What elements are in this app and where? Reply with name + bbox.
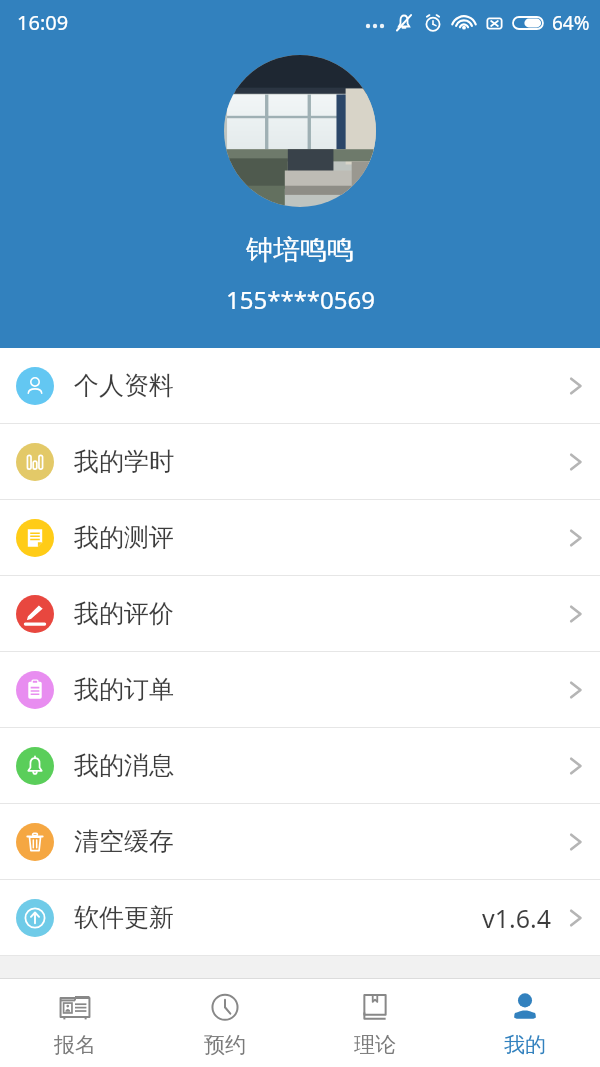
staticText: 我的测评 <box>74 522 174 553</box>
staticText: 理论 <box>354 1032 396 1058</box>
staticText: 我的订单 <box>74 674 174 705</box>
button[interactable]: 清空缓存 <box>0 804 600 879</box>
staticText: 我的学时 <box>74 446 174 477</box>
button[interactable]: 我的学时 <box>0 424 600 499</box>
staticText: v1.6.4 <box>482 901 552 935</box>
button[interactable]: 我的消息 <box>0 728 600 803</box>
button[interactable]: 我的 <box>450 979 600 1067</box>
button[interactable]: 预约 <box>150 979 300 1067</box>
button[interactable]: Profile photo <box>224 55 376 207</box>
button[interactable]: 个人资料 <box>0 348 600 423</box>
staticText: 软件更新 <box>74 902 174 933</box>
staticText: 我的消息 <box>74 750 174 781</box>
button[interactable]: 理论 <box>300 979 450 1067</box>
button[interactable]: 我的测评 <box>0 500 600 575</box>
staticText: 钟培鸣鸣 <box>246 233 354 267</box>
staticText: 我的评价 <box>74 598 174 629</box>
staticText: 个人资料 <box>74 370 174 401</box>
staticText: 64% <box>552 10 590 36</box>
staticText: 16:09 <box>17 9 69 36</box>
staticText: 清空缓存 <box>74 826 174 857</box>
button[interactable]: 我的评价 <box>0 576 600 651</box>
button[interactable]: 我的订单 <box>0 652 600 727</box>
button[interactable]: 软件更新 <box>0 880 600 955</box>
button[interactable]: 报名 <box>0 979 150 1067</box>
staticText: 我的 <box>504 1032 546 1058</box>
staticText: 报名 <box>54 1032 96 1058</box>
staticText: 155****0569 <box>226 283 375 316</box>
staticText: 预约 <box>204 1032 246 1058</box>
